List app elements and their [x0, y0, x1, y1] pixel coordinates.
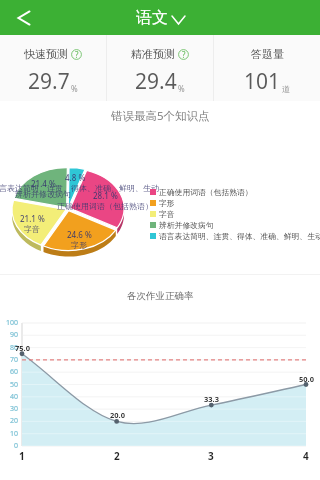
staticText: 辨析并修改病句 — [15, 189, 71, 199]
staticText: 0 — [14, 441, 19, 451]
staticText: 4 — [303, 449, 309, 463]
staticText: 正确使用词语（包括熟语） — [57, 201, 153, 211]
staticText: 正确使用词语（包括熟语） — [159, 187, 253, 197]
staticText: 字形 — [159, 198, 175, 208]
staticText: 4.8 % — [65, 172, 86, 183]
staticText: ? — [182, 49, 186, 60]
staticText: 60 — [10, 367, 19, 377]
staticText: 50 — [10, 380, 19, 390]
staticText: ? — [75, 49, 79, 60]
staticText: 3 — [208, 449, 214, 463]
staticText: 1 — [19, 449, 25, 463]
staticText: 29.4 — [135, 67, 177, 96]
staticText: 75.0 — [15, 343, 30, 353]
staticText: 答题量 — [251, 47, 284, 61]
staticText: 字音 — [24, 224, 40, 234]
staticText: 40 — [10, 392, 19, 402]
staticText: 20.0 — [110, 410, 125, 420]
staticText: 100 — [6, 318, 19, 328]
button[interactable]: Back — [9, 1, 43, 35]
staticText: 20 — [10, 416, 19, 426]
button[interactable]: 答题量 — [214, 35, 320, 96]
staticText: 辨析并修改病句 — [159, 220, 214, 230]
staticText: 精准预测 — [131, 47, 175, 61]
staticText: 语文 — [136, 8, 168, 28]
staticText: 各次作业正确率 — [127, 290, 194, 302]
staticText: 80 — [10, 343, 19, 353]
staticText: 快速预测 — [24, 47, 68, 61]
staticText: 2 — [114, 449, 120, 463]
staticText: % — [71, 83, 78, 94]
staticText: 30 — [10, 404, 19, 414]
staticText: 字形 — [71, 240, 87, 250]
staticText: % — [178, 83, 185, 94]
staticText: 10 — [10, 429, 19, 439]
staticText: 道 — [282, 84, 290, 94]
button[interactable]: 快速预测 — [0, 35, 106, 96]
staticText: 101 — [244, 67, 281, 96]
staticText: 90 — [10, 330, 19, 340]
staticText: 21.1 % — [20, 213, 45, 224]
staticText: 24.6 % — [67, 229, 92, 240]
staticText: 70 — [10, 355, 19, 365]
button[interactable]: 语文 — [136, 8, 185, 28]
staticText: 33.3 — [204, 394, 219, 404]
staticText: 29.7 — [28, 67, 70, 96]
staticText: 28.1 % — [93, 190, 118, 201]
staticText: 错误最高5个知识点 — [111, 108, 210, 124]
staticText: 50.0 — [299, 374, 314, 384]
button[interactable]: 精准预测 — [107, 35, 213, 96]
staticText: 语言表达简明、连贯、得体、准确、鲜明、生动 — [159, 231, 320, 241]
staticText: 21.4 % — [31, 178, 56, 189]
staticText: 字音 — [159, 209, 175, 219]
staticText: 语言表达简明、连贯、得体、准确、鲜明、生动 — [0, 183, 159, 193]
